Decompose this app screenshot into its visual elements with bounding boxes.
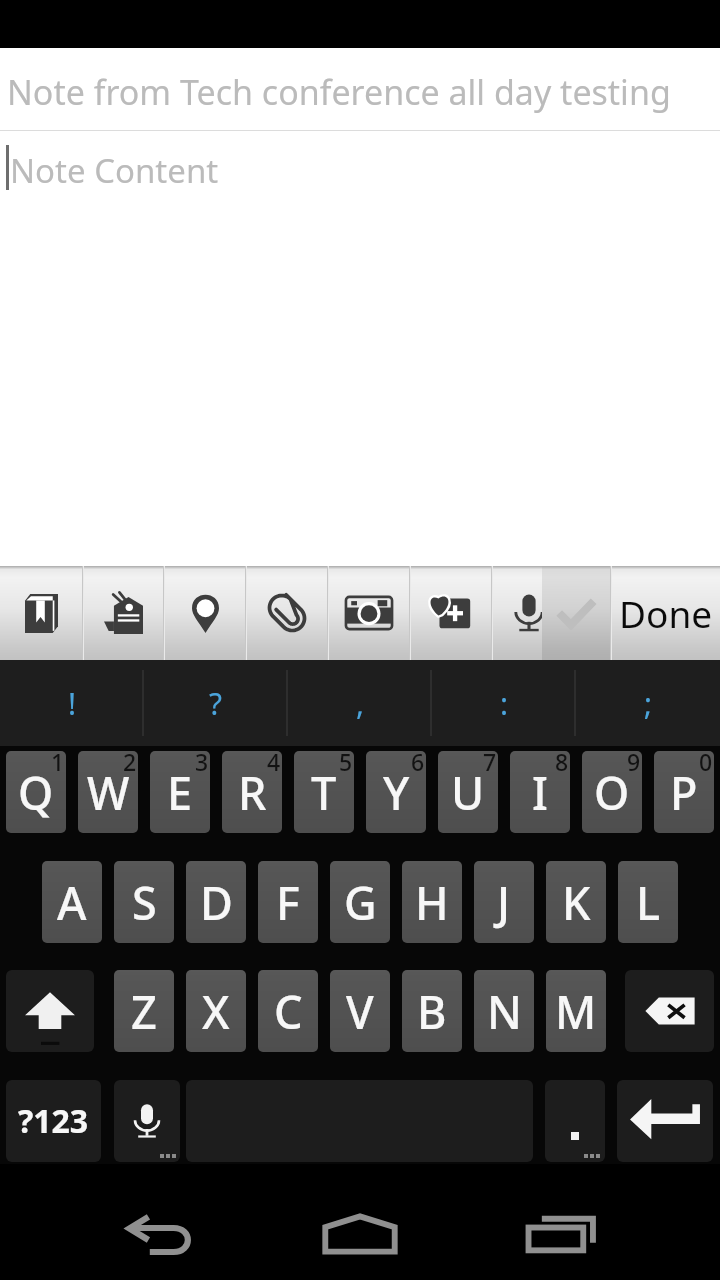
button[interactable]: Favourite [411,566,491,660]
staticText: F [276,872,300,933]
button[interactable]: Note [84,566,163,660]
button[interactable]: Shift [6,970,94,1052]
button[interactable]: Note Content [0,131,720,566]
button[interactable]: P [654,751,714,833]
button[interactable]: R [222,751,282,833]
staticText: , [356,683,365,724]
staticText: C [274,981,303,1042]
button[interactable]: ! [0,660,144,746]
button[interactable]: F [258,861,318,943]
staticText: N [487,981,522,1042]
staticText: Z [131,981,157,1042]
button[interactable]: , [288,660,432,746]
button[interactable]: Note from Tech conference all day testin… [0,48,720,130]
staticText: V [346,981,374,1042]
button[interactable]: U [438,751,498,833]
button[interactable]: ; [576,660,720,746]
button[interactable]: D [186,861,246,943]
button[interactable]: I [510,751,570,833]
staticText: Y [383,762,410,823]
button[interactable]: ? [144,660,288,746]
staticText: 2 [123,751,137,777]
button[interactable]: Symbols [6,1080,101,1162]
staticText: L [636,872,661,933]
staticText: Note from Tech conference all day testin… [7,69,671,115]
staticText: 8 [555,751,569,777]
button[interactable]: Camera [329,566,409,660]
staticText: X [202,981,230,1042]
button[interactable]: N [474,970,534,1052]
button[interactable]: S [114,861,174,943]
staticText: S [132,872,157,933]
button[interactable]: Voice [493,566,542,660]
staticText: Done [619,588,713,638]
staticText: D [200,872,233,933]
staticText: : [500,683,509,724]
staticText: 9 [627,751,641,777]
staticText: 6 [411,751,425,777]
button[interactable]: Backspace [625,970,714,1052]
staticText: 1 [51,751,65,777]
button[interactable]: H [402,861,462,943]
staticText: W [87,762,130,823]
staticText: B [417,981,447,1042]
button[interactable]: W [78,751,138,833]
button[interactable]: B [402,970,462,1052]
staticText: 5 [339,751,353,777]
button[interactable]: J [474,861,534,943]
staticText: I [532,762,548,823]
button[interactable]: M [546,970,606,1052]
staticText: ?123 [18,1099,89,1143]
button[interactable]: C [258,970,318,1052]
button[interactable]: Enter [617,1080,713,1162]
button[interactable]: L [618,861,678,943]
staticText: R [238,762,267,823]
button[interactable]: Done [612,566,720,660]
staticText: J [497,872,511,933]
button[interactable]: Home [304,1164,416,1280]
button[interactable]: Back [104,1164,216,1280]
staticText: O [594,762,630,823]
button[interactable]: E [150,751,210,833]
staticText: E [167,762,193,823]
staticText: P [670,762,698,823]
button[interactable]: Z [114,970,174,1052]
button[interactable]: T [294,751,354,833]
staticText: ; [644,683,653,724]
staticText: Note Content [10,148,219,193]
button[interactable]: Dictionary [0,566,82,660]
button[interactable]: O [582,751,642,833]
button[interactable]: Y [366,751,426,833]
button[interactable]: G [330,861,390,943]
button[interactable]: A [42,861,102,943]
staticText: 7 [483,751,497,777]
button[interactable]: Recent apps [506,1164,618,1280]
button[interactable]: Attach [247,566,327,660]
staticText: A [57,872,87,933]
staticText: 3 [195,751,209,777]
button[interactable]: : [432,660,576,746]
staticText: K [562,872,591,933]
staticText: T [311,762,337,823]
button[interactable]: Voice input [114,1080,180,1162]
staticText: M [555,981,597,1042]
button[interactable]: Q [6,751,66,833]
button[interactable]: Period [545,1080,605,1162]
button[interactable]: Location [165,566,245,660]
button[interactable]: V [330,970,390,1052]
staticText: U [451,762,485,823]
staticText: G [344,872,377,933]
staticText: 0 [699,751,713,777]
staticText: ! [68,683,77,724]
button[interactable]: Confirm [542,566,610,660]
button[interactable]: X [186,970,246,1052]
staticText: 4 [267,751,281,777]
staticText: ? [209,683,223,724]
staticText: Q [18,762,54,823]
button[interactable]: K [546,861,606,943]
staticText: H [415,872,449,933]
